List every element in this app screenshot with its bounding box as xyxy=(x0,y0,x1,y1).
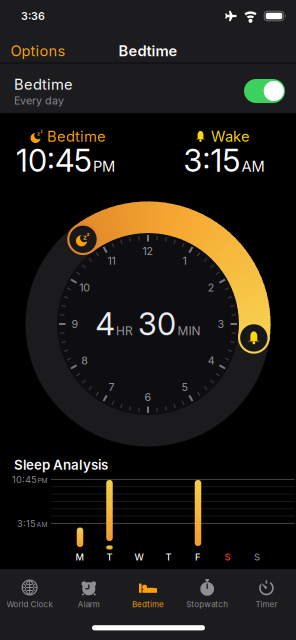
staticText: 6 xyxy=(144,391,151,403)
staticText: 9 xyxy=(71,318,78,330)
staticText: 3:15 xyxy=(183,142,240,179)
staticText: 12 xyxy=(142,245,153,257)
staticText: 10:45 xyxy=(16,142,92,179)
button[interactable]: World Clock xyxy=(0,575,61,613)
staticText: PM xyxy=(93,158,115,175)
staticText: F xyxy=(195,551,201,562)
button[interactable]: Timer xyxy=(235,575,296,613)
button[interactable]: Stopwatch xyxy=(176,575,238,613)
staticText: Stopwatch xyxy=(186,599,228,609)
staticText: Bedtime xyxy=(118,42,177,60)
staticText: S xyxy=(224,551,230,562)
staticText: AM xyxy=(241,158,264,175)
staticText: z xyxy=(86,231,89,237)
staticText: Wake xyxy=(211,128,250,145)
staticText: 3:36 xyxy=(21,10,45,22)
button[interactable]: Bedtime xyxy=(244,79,285,103)
staticText: 4 xyxy=(95,306,114,342)
staticText: z xyxy=(41,129,43,134)
staticText: Bedtime xyxy=(132,599,164,609)
staticText: 3:15 xyxy=(17,518,36,529)
staticText: 11 xyxy=(107,254,115,267)
staticText: S xyxy=(254,551,260,562)
staticText: 8 xyxy=(81,354,88,367)
staticText: T xyxy=(165,551,171,562)
button[interactable]: Alarm xyxy=(58,575,120,613)
staticText: 4 xyxy=(208,354,215,367)
staticText: W xyxy=(134,551,143,562)
staticText: Bedtime xyxy=(47,128,106,145)
staticText: T xyxy=(106,551,112,562)
staticText: Every day xyxy=(14,94,64,107)
staticText: 5 xyxy=(181,381,187,393)
staticText: Bedtime xyxy=(14,76,73,93)
button[interactable]: Bedtime xyxy=(117,575,179,613)
staticText: 30 xyxy=(138,306,176,342)
staticText: Options xyxy=(10,42,65,60)
button[interactable]: Options xyxy=(8,37,67,65)
staticText: World Clock xyxy=(7,599,53,609)
staticText: Alarm xyxy=(78,599,100,609)
staticText: 7 xyxy=(108,381,114,393)
staticText: 10 xyxy=(79,281,90,294)
staticText: z xyxy=(83,233,87,241)
staticText: Sleep Analysis xyxy=(14,457,108,473)
staticText: 1 xyxy=(182,254,186,267)
staticText: 2 xyxy=(208,281,215,294)
staticText: PM xyxy=(37,476,47,484)
staticText: M xyxy=(75,551,84,562)
staticText: MIN xyxy=(177,324,200,338)
staticText: AM xyxy=(36,520,47,528)
staticText: z xyxy=(37,130,40,137)
staticText: 3 xyxy=(217,318,224,330)
staticText: Timer xyxy=(255,599,277,609)
staticText: 10:45 xyxy=(12,474,37,485)
staticText: HR xyxy=(116,324,133,338)
